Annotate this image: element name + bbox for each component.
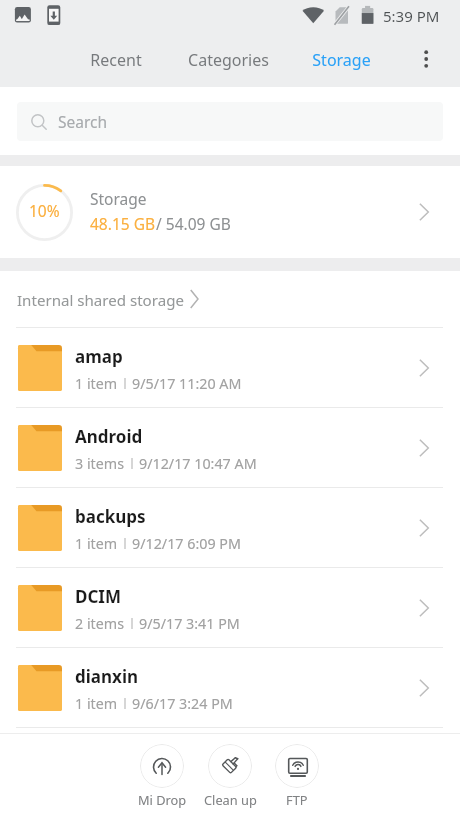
button[interactable]: More options: [406, 31, 446, 87]
button[interactable]: Android: [0, 408, 460, 487]
button[interactable]: Recent: [58, 31, 174, 87]
staticText: Search: [58, 111, 108, 132]
staticText: Categories: [188, 49, 269, 71]
staticText: FTP: [286, 791, 308, 808]
staticText: 9/6/17 3:24 PM: [132, 694, 233, 713]
staticText: DCIM: [75, 585, 122, 608]
staticText: backups: [75, 505, 146, 528]
button[interactable]: Storage: [279, 31, 403, 87]
button[interactable]: Mi Drop: [128, 744, 196, 808]
staticText: 9/12/17 6:09 PM: [132, 534, 241, 553]
staticText: Recent: [90, 49, 142, 71]
staticText: 2 items: [75, 614, 125, 633]
staticText: Clean up: [204, 791, 257, 808]
staticText: 9/5/17 3:41 PM: [139, 614, 240, 633]
button[interactable]: Search: [17, 102, 443, 141]
button[interactable]: 10%: [0, 166, 460, 258]
staticText: 1 item: [75, 694, 118, 713]
staticText: 10%: [29, 200, 60, 221]
button[interactable]: amap: [0, 328, 460, 407]
button[interactable]: FTP: [263, 744, 331, 808]
staticText: 9/5/17 11:20 AM: [132, 374, 242, 393]
button[interactable]: DCIM: [0, 568, 460, 647]
staticText: Storage: [90, 188, 147, 209]
staticText: / 54.09 GB: [156, 213, 231, 234]
staticText: Internal shared storage: [17, 290, 184, 311]
button[interactable]: dianxin: [0, 648, 460, 727]
staticText: 9/12/17 10:47 AM: [139, 454, 257, 473]
staticText: Storage: [312, 49, 371, 71]
staticText: amap: [75, 345, 123, 368]
button[interactable]: Clean up: [196, 744, 264, 808]
staticText: Android: [75, 425, 143, 448]
staticText: 1 item: [75, 534, 118, 553]
button[interactable]: backups: [0, 488, 460, 567]
staticText: 48.15 GB: [90, 213, 156, 234]
staticText: Mi Drop: [138, 791, 187, 808]
button[interactable]: Categories: [148, 31, 308, 87]
staticText: 5:39 PM: [383, 6, 440, 26]
button[interactable]: Internal shared storage: [0, 271, 460, 327]
staticText: 1 item: [75, 374, 118, 393]
staticText: dianxin: [75, 665, 139, 688]
staticText: 3 items: [75, 454, 125, 473]
